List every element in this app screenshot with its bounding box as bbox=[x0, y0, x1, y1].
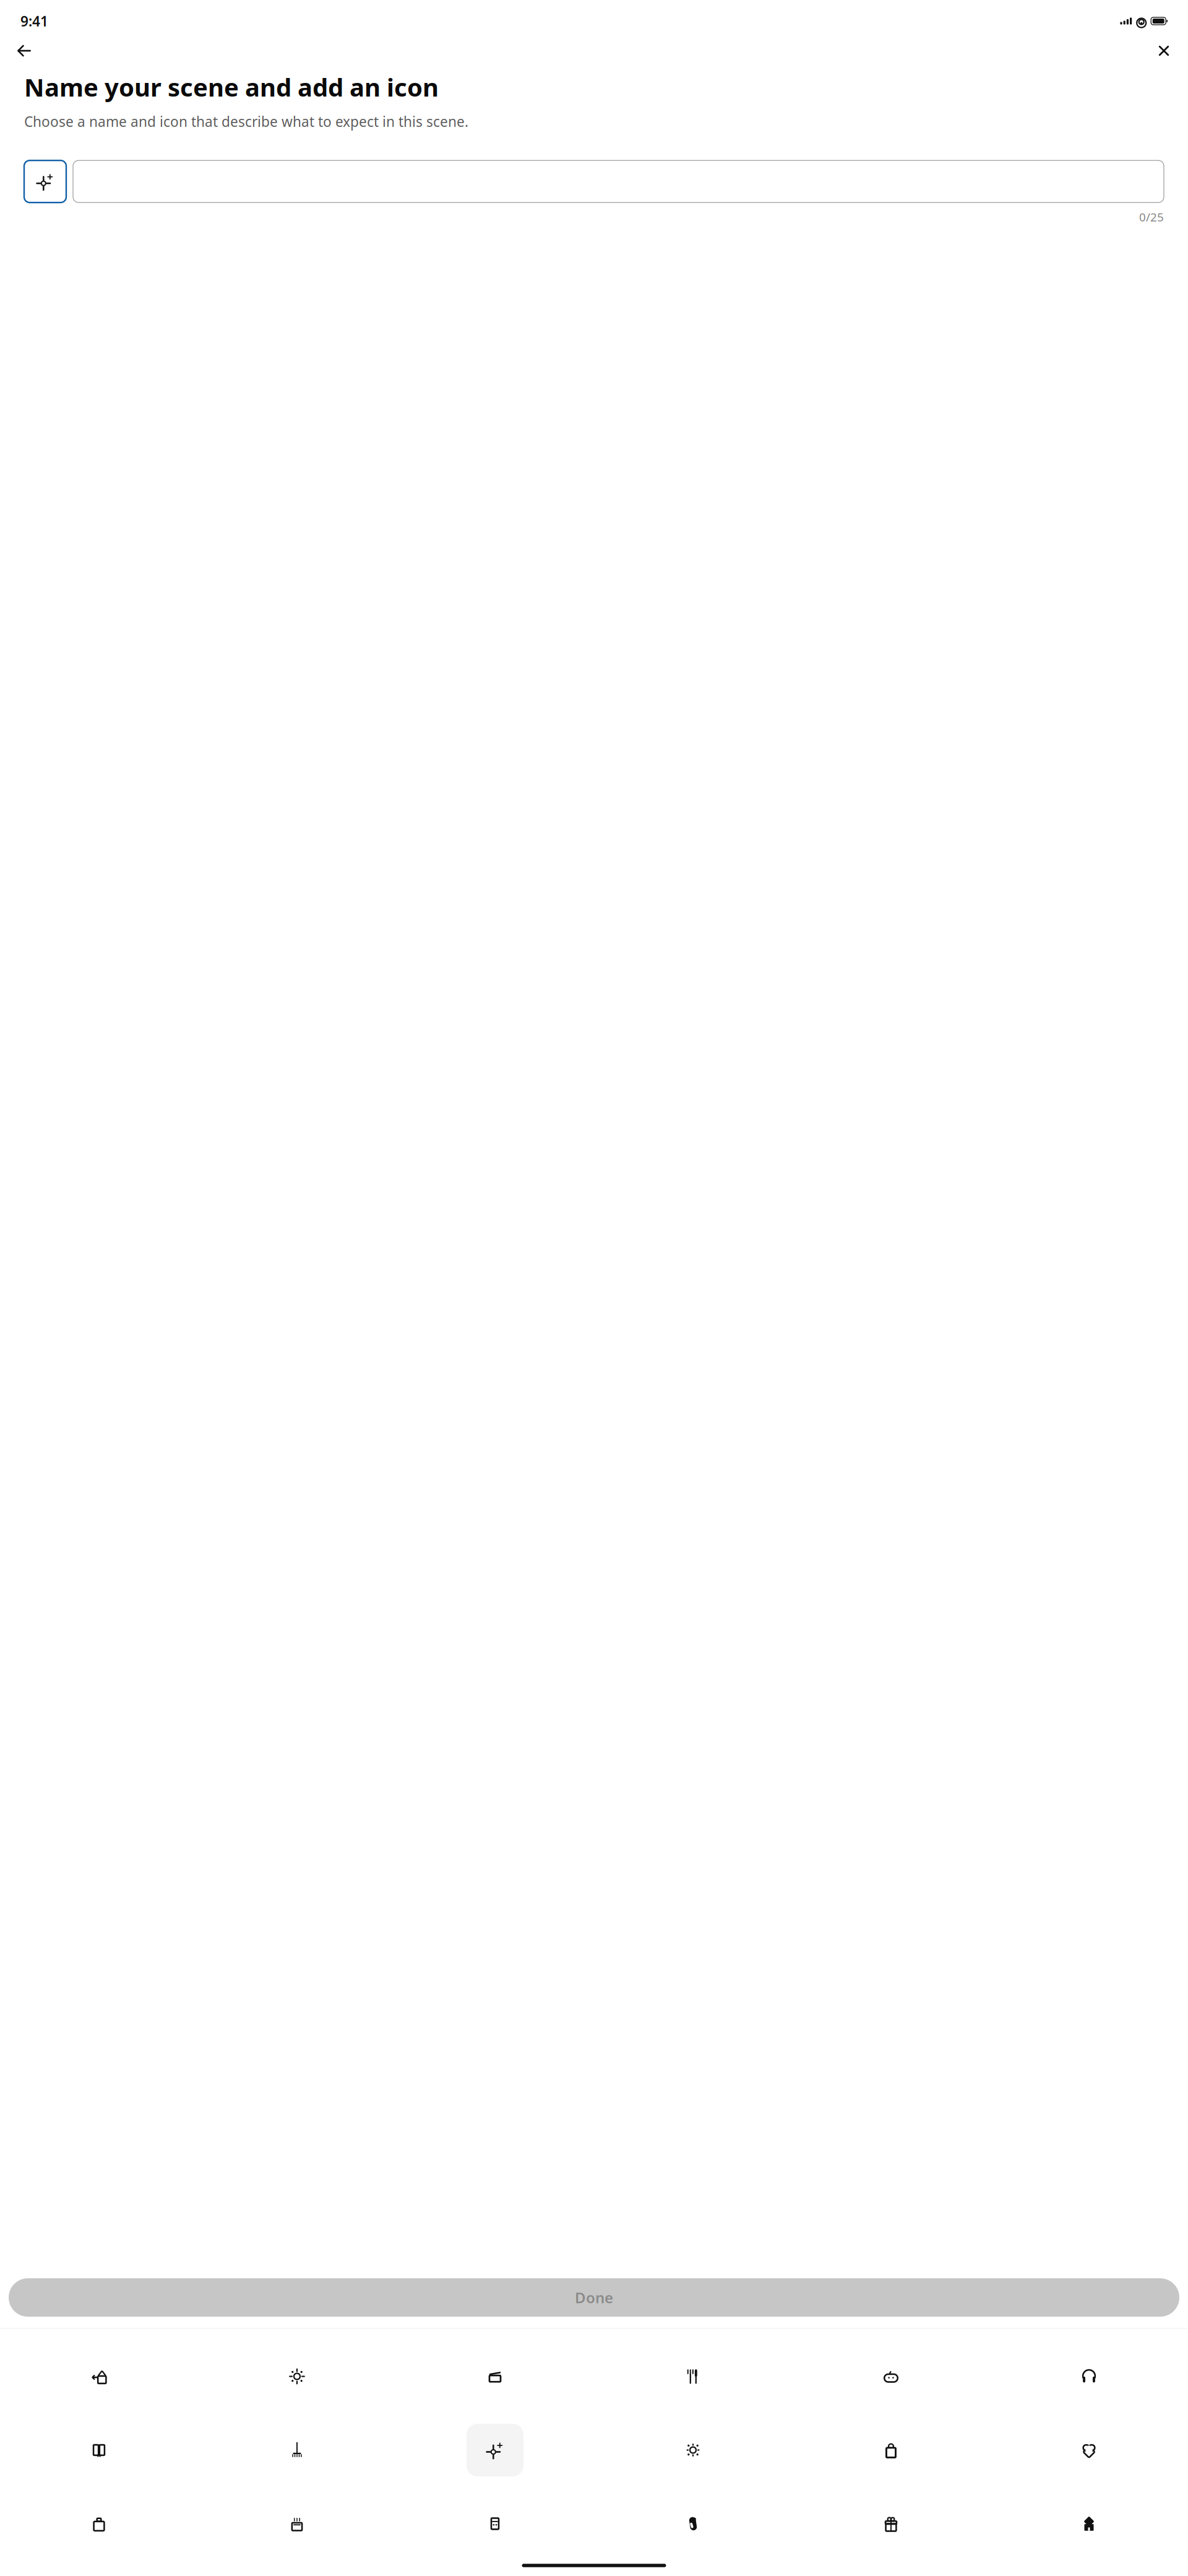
button[interactable]: Music bbox=[990, 2350, 1188, 2403]
button[interactable]: Home bbox=[990, 2497, 1188, 2550]
button[interactable]: Drinks bbox=[396, 2497, 594, 2550]
button[interactable]: Shopping bbox=[792, 2424, 990, 2476]
button[interactable]: Cozy bbox=[594, 2497, 792, 2550]
button[interactable]: Bright bbox=[198, 2350, 396, 2403]
staticText: 0/25 bbox=[1139, 209, 1164, 225]
button[interactable]: Gift bbox=[792, 2497, 990, 2550]
button[interactable]: Movie bbox=[396, 2350, 594, 2403]
staticText: 9:41 bbox=[20, 12, 48, 30]
button[interactable]: Gaming bbox=[792, 2350, 990, 2403]
button[interactable]: Done bbox=[9, 2278, 1179, 2317]
button[interactable]: Work bbox=[0, 2497, 198, 2550]
staticText: Done bbox=[575, 2288, 613, 2307]
button[interactable]: Arrive home bbox=[0, 2350, 198, 2403]
staticText: Name your scene and add an icon bbox=[24, 71, 439, 103]
button[interactable]: Back bbox=[11, 37, 38, 64]
button[interactable]: Dining bbox=[594, 2350, 792, 2403]
button[interactable]: Favorite bbox=[990, 2424, 1188, 2476]
staticText: Choose a name and icon that describe wha… bbox=[24, 112, 468, 131]
button[interactable]: Dimmed bbox=[594, 2424, 792, 2476]
button[interactable]: Selected icon bbox=[24, 160, 66, 203]
button[interactable]: Reading bbox=[0, 2424, 198, 2476]
button[interactable]: Scene name bbox=[73, 160, 1164, 203]
button[interactable]: Close bbox=[1150, 37, 1177, 64]
button[interactable]: Celebration bbox=[198, 2497, 396, 2550]
button[interactable]: Sparkle bbox=[396, 2424, 594, 2476]
button[interactable]: Cleaning bbox=[198, 2424, 396, 2476]
